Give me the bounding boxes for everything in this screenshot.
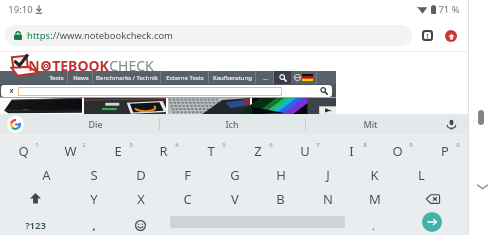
button[interactable]: W <box>47 139 94 162</box>
staticText: 8 <box>363 141 367 149</box>
button[interactable]: C <box>164 187 211 210</box>
staticText: . <box>372 218 375 233</box>
staticText: Y <box>90 190 98 208</box>
staticText: 6 <box>269 141 273 149</box>
button[interactable]: Search <box>274 71 291 84</box>
staticText: I <box>349 142 354 160</box>
button[interactable]: Kaufberatung <box>209 71 256 84</box>
button[interactable]: J <box>304 163 351 186</box>
button[interactable]: P <box>421 139 468 162</box>
button[interactable]: X <box>117 187 164 210</box>
button[interactable]: N <box>304 187 351 210</box>
button[interactable]: Externe Tests <box>161 71 209 84</box>
button[interactable]: L <box>398 163 445 186</box>
button[interactable]: U <box>281 139 328 162</box>
staticText: C <box>183 190 192 208</box>
staticText: O <box>392 142 403 160</box>
button[interactable]: G <box>211 163 258 186</box>
staticText: X <box>137 190 145 208</box>
button[interactable]: Q <box>0 139 47 162</box>
staticText: A <box>42 166 51 184</box>
staticText: P <box>441 142 449 160</box>
button[interactable]: https <box>5 25 412 46</box>
button[interactable]: Die <box>60 114 130 134</box>
staticText: 5 <box>222 141 226 149</box>
button[interactable]: … <box>256 71 274 84</box>
button[interactable]: Voice input <box>438 114 464 134</box>
button[interactable]: Mit <box>335 114 405 134</box>
staticText: Z <box>254 142 262 160</box>
button[interactable]: F <box>164 163 211 186</box>
staticText: 2 <box>82 141 86 149</box>
staticText: … <box>263 74 268 82</box>
button[interactable]: Benchmarks / Technik <box>93 71 161 84</box>
staticText: News <box>73 74 89 82</box>
staticText: , <box>92 218 96 233</box>
button[interactable]: Emoji <box>117 211 164 235</box>
staticText: 19:10 <box>8 3 33 16</box>
button[interactable]: News <box>68 71 93 84</box>
staticText: 7 <box>316 141 320 149</box>
staticText: 0 <box>456 141 460 149</box>
button[interactable]: O <box>374 139 421 162</box>
button[interactable]: Backspace <box>409 187 456 210</box>
staticText: Externe Tests <box>166 74 204 82</box>
staticText: TEBOOK <box>52 56 109 75</box>
staticText: R <box>159 142 168 160</box>
button[interactable]: E <box>94 139 141 162</box>
button[interactable]: Tests <box>45 71 68 84</box>
button[interactable]: ?123 <box>12 211 59 235</box>
button[interactable]: T <box>187 139 234 162</box>
button[interactable]: . <box>350 211 397 235</box>
staticText: ?123 <box>25 219 46 232</box>
button[interactable]: Y <box>70 187 117 210</box>
staticText: M <box>369 190 381 208</box>
staticText: N <box>28 56 40 75</box>
staticText: N <box>323 190 333 208</box>
staticText: ://www.notebookcheck.com <box>50 29 173 42</box>
staticText: J <box>326 166 330 184</box>
button[interactable]: M <box>351 187 398 210</box>
button[interactable]: Shift <box>12 187 59 210</box>
button[interactable]: Expand <box>468 172 496 200</box>
staticText: Tests <box>49 74 64 82</box>
button[interactable]: Update <box>439 24 462 47</box>
staticText: W <box>64 142 77 160</box>
button[interactable]: V <box>211 187 258 210</box>
staticText: Benchmarks / Technik <box>96 74 158 82</box>
button[interactable]: Tabs <box>415 23 439 47</box>
button[interactable]: S <box>70 163 117 186</box>
button[interactable]: Enter <box>422 212 442 232</box>
staticText: 1 <box>35 141 39 149</box>
button[interactable]: D <box>117 163 164 186</box>
staticText: H <box>276 166 286 184</box>
staticText: Ich <box>225 118 239 130</box>
staticText: https <box>27 29 50 42</box>
staticText: 4 <box>175 141 179 149</box>
button[interactable]: Google <box>7 116 24 133</box>
staticText: 1 <box>425 32 430 39</box>
staticText: O <box>40 56 52 75</box>
staticText: 3 <box>129 141 133 149</box>
staticText: L <box>418 166 425 184</box>
button[interactable]: K <box>351 163 398 186</box>
staticText: T <box>207 142 215 160</box>
staticText: Q <box>18 142 29 160</box>
button[interactable]: H <box>257 163 304 186</box>
staticText: V <box>231 190 239 208</box>
staticText: B <box>276 190 285 208</box>
button[interactable]: R <box>140 139 187 162</box>
staticText: 9 <box>409 141 413 149</box>
button[interactable]: Ich <box>197 114 267 134</box>
button[interactable]: B <box>257 187 304 210</box>
staticText: G <box>230 166 240 184</box>
staticText: U <box>300 142 310 160</box>
button[interactable]: A <box>23 163 70 186</box>
staticText: CHECK <box>109 56 154 75</box>
staticText: x <box>9 86 14 96</box>
button[interactable]: I <box>328 139 375 162</box>
staticText: Die <box>88 118 103 130</box>
button[interactable]: Z <box>234 139 281 162</box>
button[interactable]: , <box>70 211 117 235</box>
